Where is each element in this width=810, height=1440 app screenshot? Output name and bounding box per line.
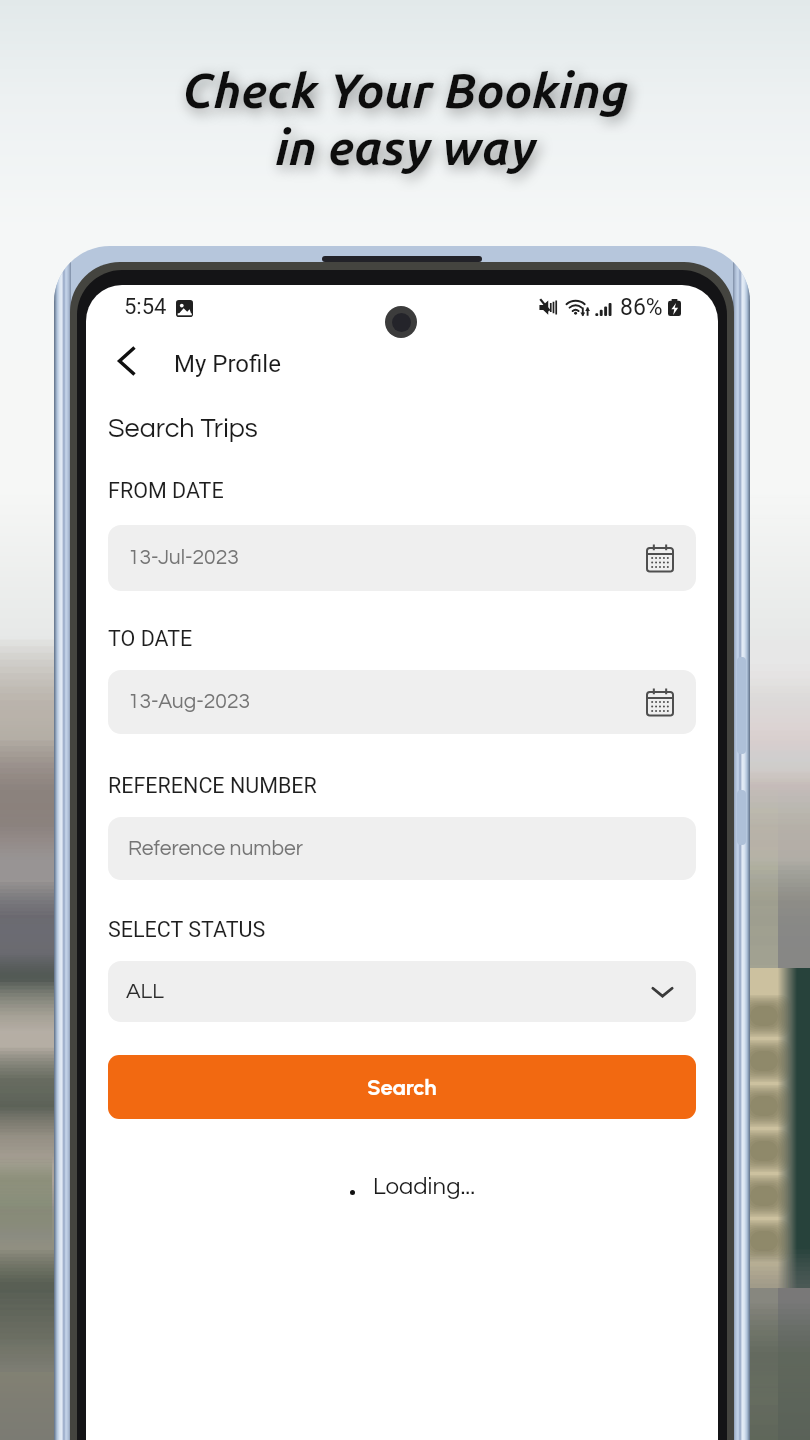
other: Pick date [646,544,674,572]
staticText: Check Your Booking in easy way [182,63,629,175]
button[interactable]: 13-Aug-2023 [108,670,696,734]
staticText: 5:54 [124,294,167,320]
staticText: Loading... [373,1174,476,1199]
staticText: 13-Aug-2023 [128,691,250,713]
button[interactable]: Search [108,1055,696,1119]
staticText: Search Trips [108,415,258,443]
button[interactable]: Back [101,335,153,387]
staticText: 86% [620,294,663,321]
other: Pick date [646,688,674,716]
staticText: SELECT STATUS [108,917,266,942]
staticText: TO DATE [108,626,193,651]
staticText: FROM DATE [108,478,224,503]
button[interactable]: Reference number [108,817,696,880]
staticText: Reference number [128,838,304,860]
staticText: Search [367,1074,437,1100]
staticText: My Profile [174,350,281,378]
button[interactable]: 13-Jul-2023 [108,525,696,591]
button[interactable]: ALL [108,961,696,1022]
staticText: REFERENCE NUMBER [108,773,317,798]
staticText: ALL [126,980,165,1003]
staticText: 13-Jul-2023 [128,547,239,569]
